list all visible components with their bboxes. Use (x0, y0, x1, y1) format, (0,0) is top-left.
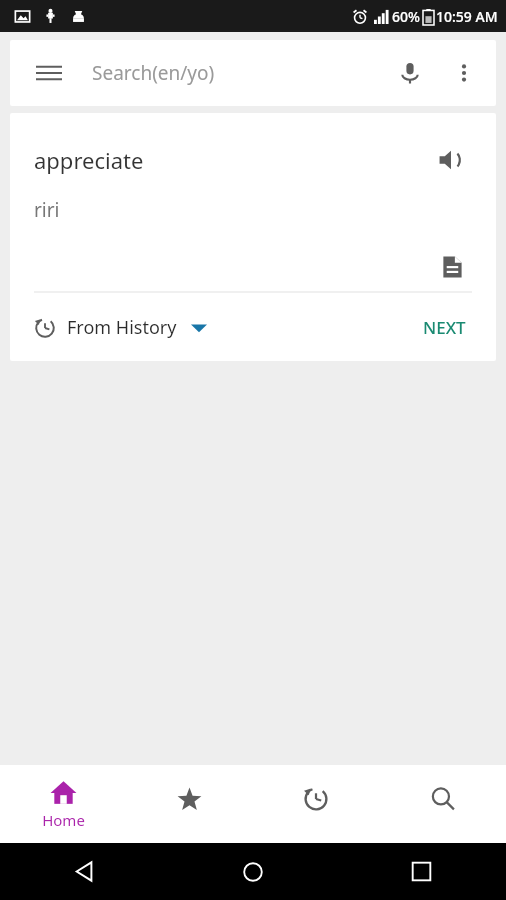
button[interactable]: NEXT (417, 308, 472, 347)
button[interactable]: Pronounce (430, 139, 472, 181)
button[interactable]: History (252, 765, 379, 843)
button[interactable]: Search (379, 765, 506, 843)
staticText: 60% (392, 7, 420, 26)
button[interactable]: Favorites (126, 765, 252, 843)
button[interactable]: Voice search (390, 53, 430, 93)
staticText: riri (34, 197, 60, 223)
button[interactable]: More options (444, 53, 484, 93)
staticText: Home (42, 810, 85, 830)
staticText: NEXT (423, 316, 466, 339)
button[interactable]: Home (0, 765, 126, 843)
button[interactable]: Menu (32, 56, 66, 90)
button[interactable]: From History (34, 315, 207, 340)
staticText: 10:59 AM (436, 7, 498, 26)
staticText: Search(en/yo) (92, 60, 215, 86)
staticText: From History (67, 315, 177, 340)
button[interactable]: Menu (10, 40, 496, 106)
button[interactable]: Details (432, 247, 472, 287)
staticText: appreciate (34, 145, 144, 175)
